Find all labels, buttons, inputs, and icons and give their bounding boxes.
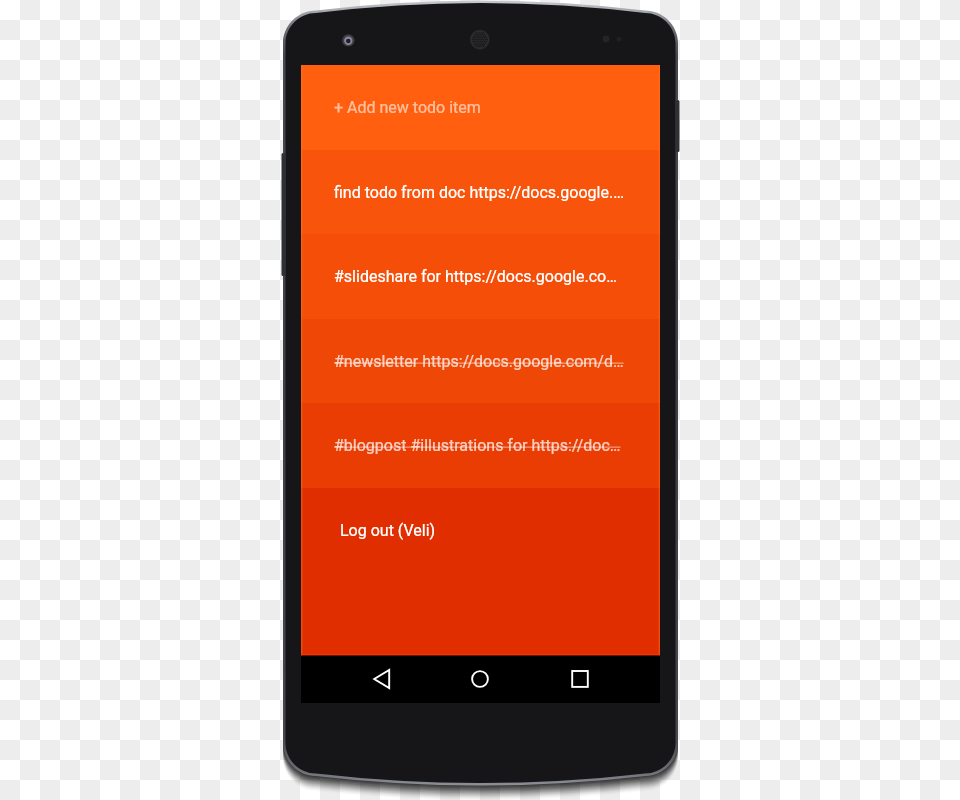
button[interactable]: Back bbox=[358, 655, 406, 703]
staticText: #blogpost #illustrations for https://doc… bbox=[334, 436, 621, 455]
button[interactable]: + Add new todo item bbox=[301, 65, 660, 150]
button[interactable]: #slideshare for https://docs.google.co… bbox=[301, 234, 660, 319]
staticText: Log out (Veli) bbox=[340, 521, 436, 540]
staticText: #slideshare for https://docs.google.co… bbox=[334, 267, 617, 286]
button[interactable]: Recent apps bbox=[556, 655, 604, 703]
button[interactable]: Home bbox=[456, 655, 504, 703]
button[interactable]: #blogpost #illustrations for https://doc… bbox=[301, 403, 660, 488]
button[interactable]: #newsletter https://docs.google.com/d… bbox=[301, 319, 660, 403]
staticText: + Add new todo item bbox=[334, 98, 481, 117]
staticText: find todo from doc https://docs.google.… bbox=[334, 183, 624, 202]
button[interactable]: Log out (Veli) bbox=[324, 512, 452, 548]
staticText: #newsletter https://docs.google.com/d… bbox=[334, 352, 624, 371]
button[interactable]: find todo from doc https://docs.google.… bbox=[301, 150, 660, 234]
